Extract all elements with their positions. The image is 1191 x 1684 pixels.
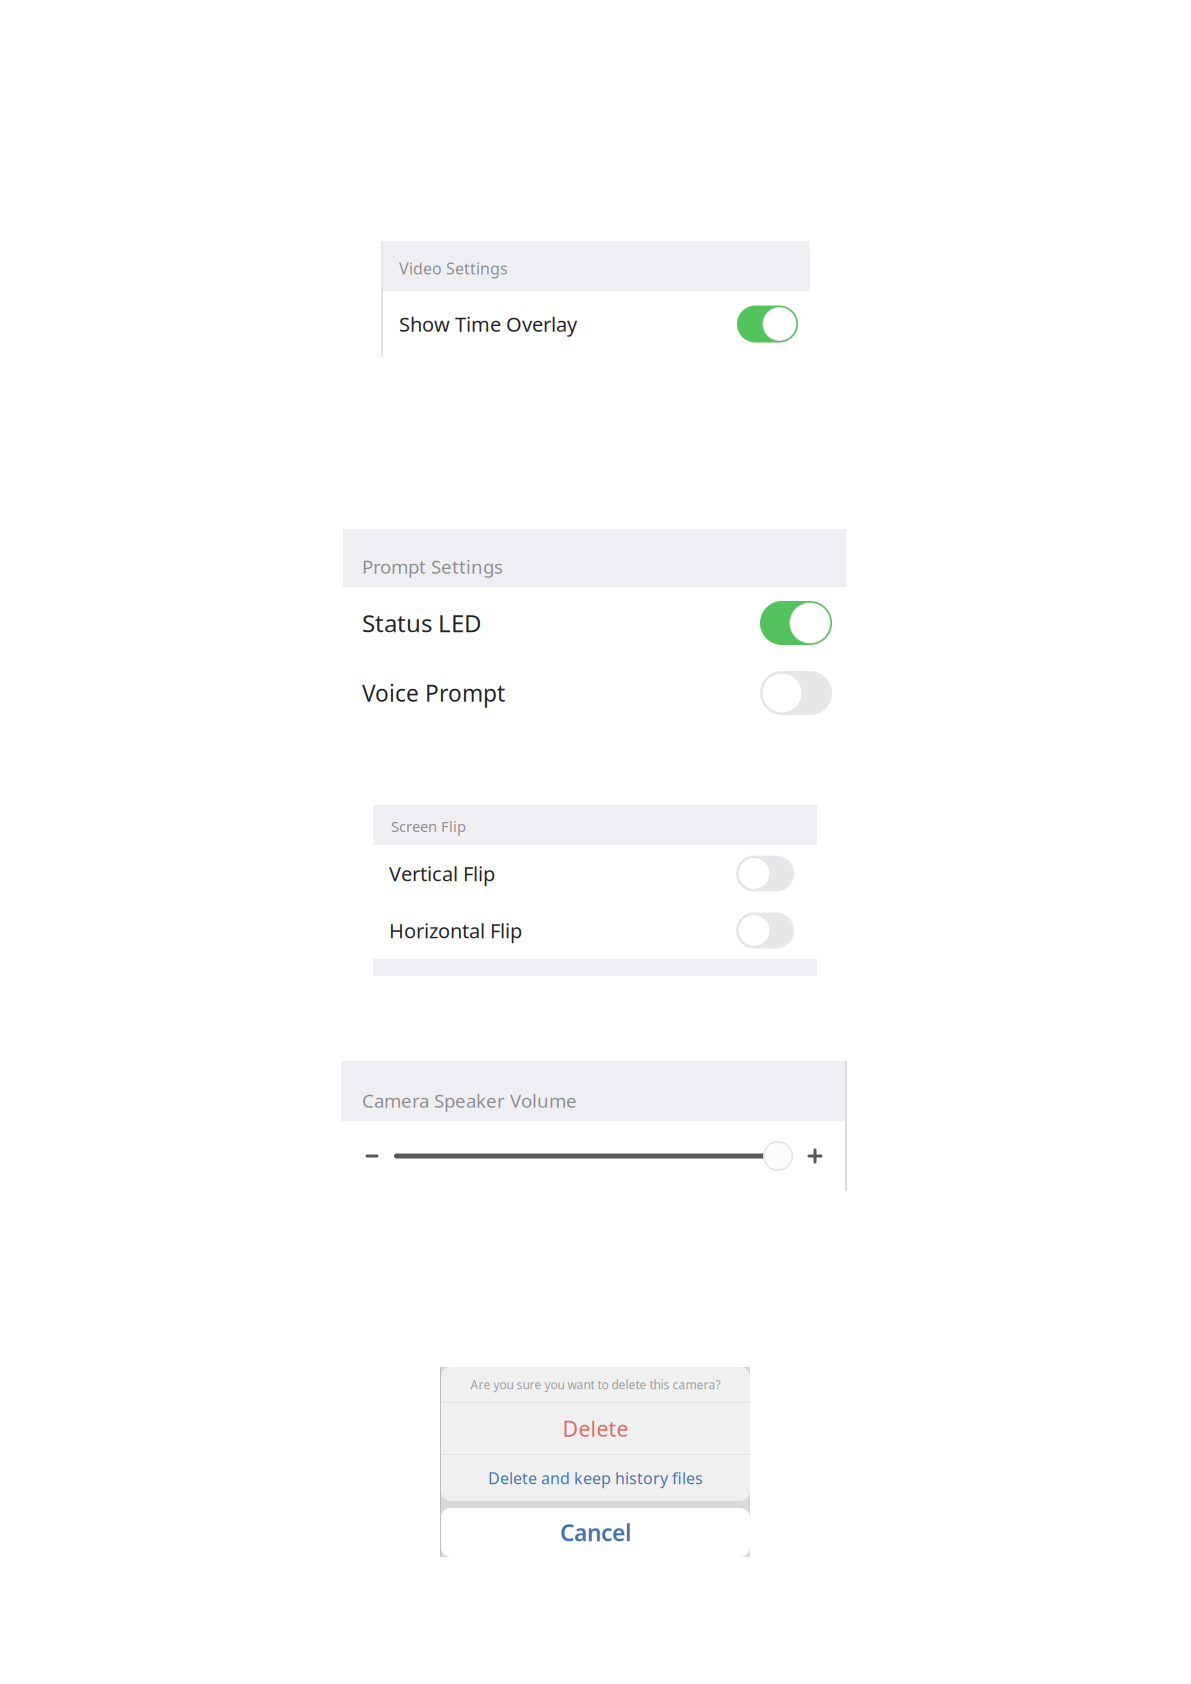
staticText: Status LED	[362, 607, 482, 639]
staticText: Delete and keep history files	[488, 1467, 703, 1489]
staticText: Screen Flip	[391, 816, 466, 836]
button[interactable]: Delete and keep history files	[441, 1455, 750, 1501]
staticText: Video Settings	[399, 258, 508, 279]
staticText: Prompt Settings	[362, 554, 503, 579]
staticText: Are you sure you want to delete this cam…	[470, 1376, 720, 1392]
staticText: Camera Speaker Volume	[362, 1088, 577, 1113]
staticText: Voice Prompt	[362, 678, 505, 708]
button[interactable]: Vertical Flip	[373, 845, 817, 902]
button[interactable]: Delete	[441, 1403, 750, 1454]
button[interactable]: Show Time Overlay	[381, 291, 810, 357]
button[interactable]: Decrease volume	[359, 1141, 385, 1171]
staticText: Delete	[562, 1414, 628, 1443]
button[interactable]: Cancel	[441, 1508, 750, 1557]
button[interactable]: Voice Prompt	[343, 659, 846, 727]
staticText: Show Time Overlay	[399, 311, 577, 337]
staticText: Cancel	[560, 1517, 631, 1547]
button[interactable]: Horizontal Flip	[373, 902, 817, 959]
button[interactable]: Status LED	[343, 587, 846, 659]
button[interactable]: Increase volume	[802, 1141, 828, 1171]
staticText: Horizontal Flip	[389, 917, 522, 944]
staticText: Vertical Flip	[389, 860, 495, 887]
